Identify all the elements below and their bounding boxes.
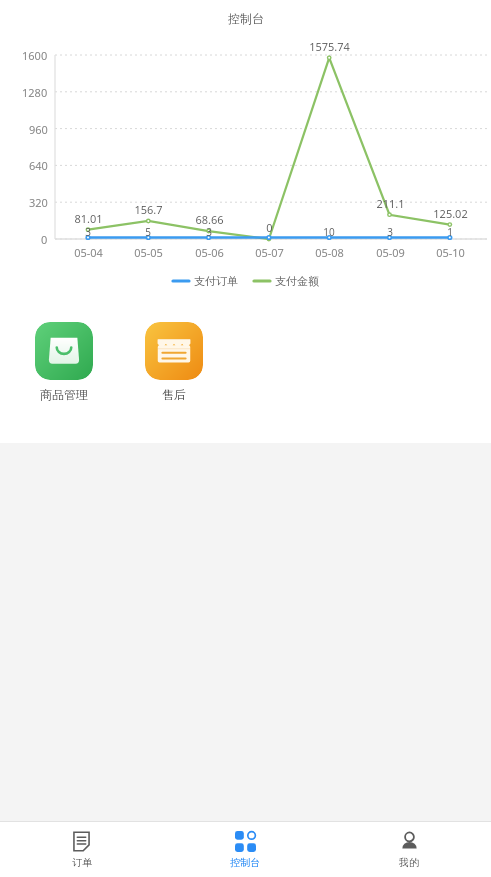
staticText: 订单 bbox=[72, 856, 92, 869]
staticText: 640 bbox=[29, 158, 48, 173]
staticText: 1 bbox=[447, 225, 453, 239]
staticText: 1280 bbox=[22, 85, 48, 100]
staticText: 我的 bbox=[399, 856, 419, 869]
staticText: 320 bbox=[29, 195, 48, 210]
staticText: 0 bbox=[41, 232, 48, 247]
button[interactable]: 控制台 bbox=[163, 822, 327, 877]
staticText: 156.7 bbox=[134, 202, 163, 217]
staticText: 10 bbox=[323, 225, 335, 239]
staticText: 1600 bbox=[22, 48, 48, 63]
staticText: 支付订单 bbox=[194, 274, 238, 288]
staticText: 售后 bbox=[162, 387, 186, 402]
staticText: 控制台 bbox=[228, 11, 264, 26]
staticText: 960 bbox=[29, 122, 48, 137]
staticText: 5 bbox=[145, 225, 151, 239]
staticText: 3 bbox=[387, 225, 393, 239]
staticText: 05-10 bbox=[436, 245, 465, 260]
staticText: 0 bbox=[266, 220, 273, 235]
staticText: 68.66 bbox=[195, 212, 224, 227]
staticText: 支付金额 bbox=[275, 274, 319, 288]
staticText: 3 bbox=[85, 225, 91, 239]
staticText: 05-04 bbox=[74, 245, 103, 260]
staticText: 商品管理 bbox=[40, 387, 88, 402]
staticText: 1575.74 bbox=[309, 39, 350, 54]
staticText: 81.01 bbox=[74, 211, 103, 226]
button[interactable]: 订单 bbox=[0, 822, 163, 877]
staticText: 05-08 bbox=[315, 245, 344, 260]
staticText: 05-07 bbox=[255, 245, 284, 260]
staticText: 211.1 bbox=[376, 196, 405, 211]
staticText: 控制台 bbox=[230, 856, 260, 869]
staticText: 125.02 bbox=[433, 206, 468, 221]
staticText: 05-09 bbox=[376, 245, 405, 260]
staticText: 05-06 bbox=[195, 245, 224, 260]
button[interactable]: 商品管理 bbox=[22, 320, 106, 404]
button[interactable]: 我的 bbox=[327, 822, 491, 877]
staticText: 05-05 bbox=[134, 245, 163, 260]
button[interactable]: 售后 bbox=[132, 320, 216, 404]
staticText: 3 bbox=[206, 225, 212, 239]
